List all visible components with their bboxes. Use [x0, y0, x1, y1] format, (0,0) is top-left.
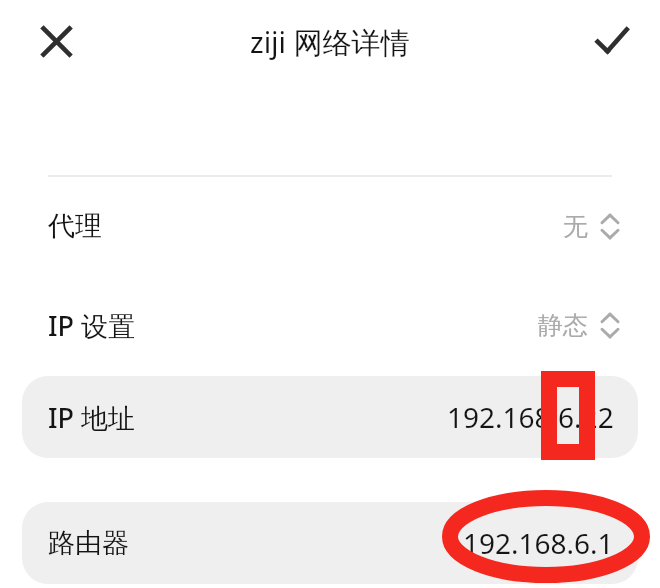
- button[interactable]: 路由器: [22, 502, 638, 584]
- staticText: 192.168.6.1: [463, 524, 614, 562]
- button[interactable]: Close: [32, 17, 80, 65]
- staticText: 无: [563, 211, 588, 242]
- staticText: 路由器: [48, 526, 129, 560]
- staticText: ziji 网络详情: [250, 22, 410, 62]
- button[interactable]: IP 地址: [22, 376, 638, 458]
- staticText: 192.168.6.22: [447, 398, 614, 436]
- button[interactable]: 代理: [0, 195, 660, 257]
- staticText: IP 设置: [48, 307, 136, 344]
- button[interactable]: Confirm: [588, 17, 636, 65]
- button[interactable]: IP 设置: [0, 294, 660, 356]
- staticText: IP 地址: [48, 399, 136, 436]
- staticText: 静态: [538, 310, 588, 341]
- staticText: 代理: [48, 209, 102, 243]
